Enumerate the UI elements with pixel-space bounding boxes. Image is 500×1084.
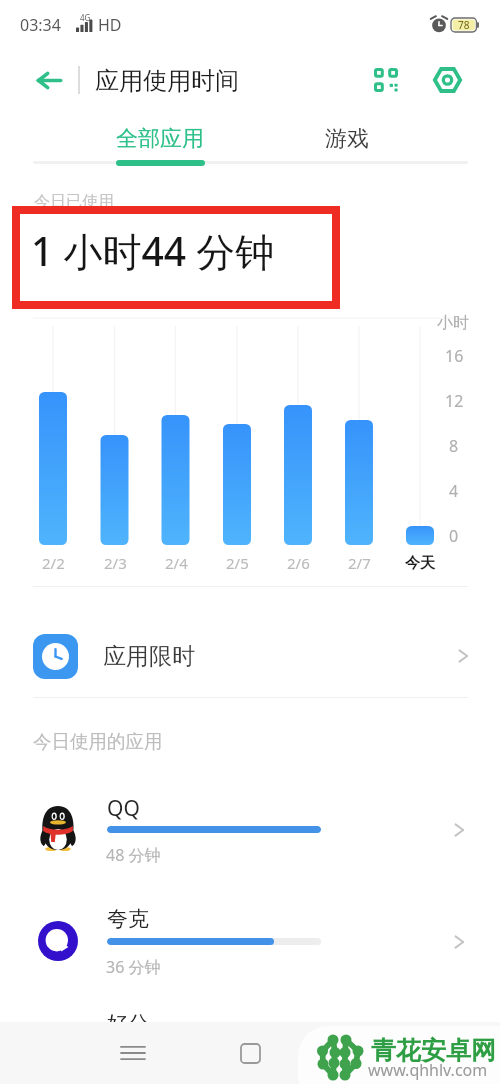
staticText: 12 [445,390,464,412]
staticText: 03:34 [20,14,61,36]
button[interactable]: Back [29,62,69,98]
button[interactable]: 全部应用 [74,119,246,159]
staticText: 今天 [405,554,435,573]
staticText: 应用使用时间 [95,66,239,96]
button[interactable]: QQ [0,780,500,892]
staticText: 2/2 [42,553,65,573]
staticText: 2/5 [226,553,249,573]
staticText: 全部应用 [116,125,204,153]
staticText: 好分 [107,1011,149,1037]
button[interactable]: 应用限时 [0,601,500,711]
staticText: 1 小时44 分钟 [31,224,275,277]
staticText: 夸克 [107,906,149,932]
button[interactable]: 夸克 [0,892,500,1004]
button[interactable]: Home [222,1022,278,1084]
button[interactable]: Scan QR code [368,62,404,98]
button[interactable]: Settings [429,62,465,98]
staticText: 2/7 [348,553,371,573]
staticText: www.qhhlv.com [368,1059,488,1081]
staticText: 今日使用的应用 [33,730,163,753]
staticText: 78 [458,18,470,32]
staticText: 48 分钟 [106,844,161,866]
staticText: QQ [107,794,140,823]
staticText: 4G [80,12,91,23]
staticText: 应用限时 [103,642,195,671]
staticText: 游戏 [325,125,369,153]
staticText: 2/3 [104,553,127,573]
staticText: 小时 [437,313,469,333]
button[interactable]: 游戏 [261,119,433,159]
staticText: 4 [449,480,459,502]
staticText: HD [98,14,122,36]
staticText: 2/6 [287,553,310,573]
button[interactable]: Recents [105,1022,161,1084]
staticText: 今日已使用 [34,192,114,212]
staticText: 16 [445,345,464,367]
staticText: 青花安卓网 [371,1035,496,1066]
staticText: 8 [449,435,459,457]
staticText: 2/4 [165,553,188,573]
staticText: 36 分钟 [106,956,161,978]
staticText: 0 [449,525,459,547]
